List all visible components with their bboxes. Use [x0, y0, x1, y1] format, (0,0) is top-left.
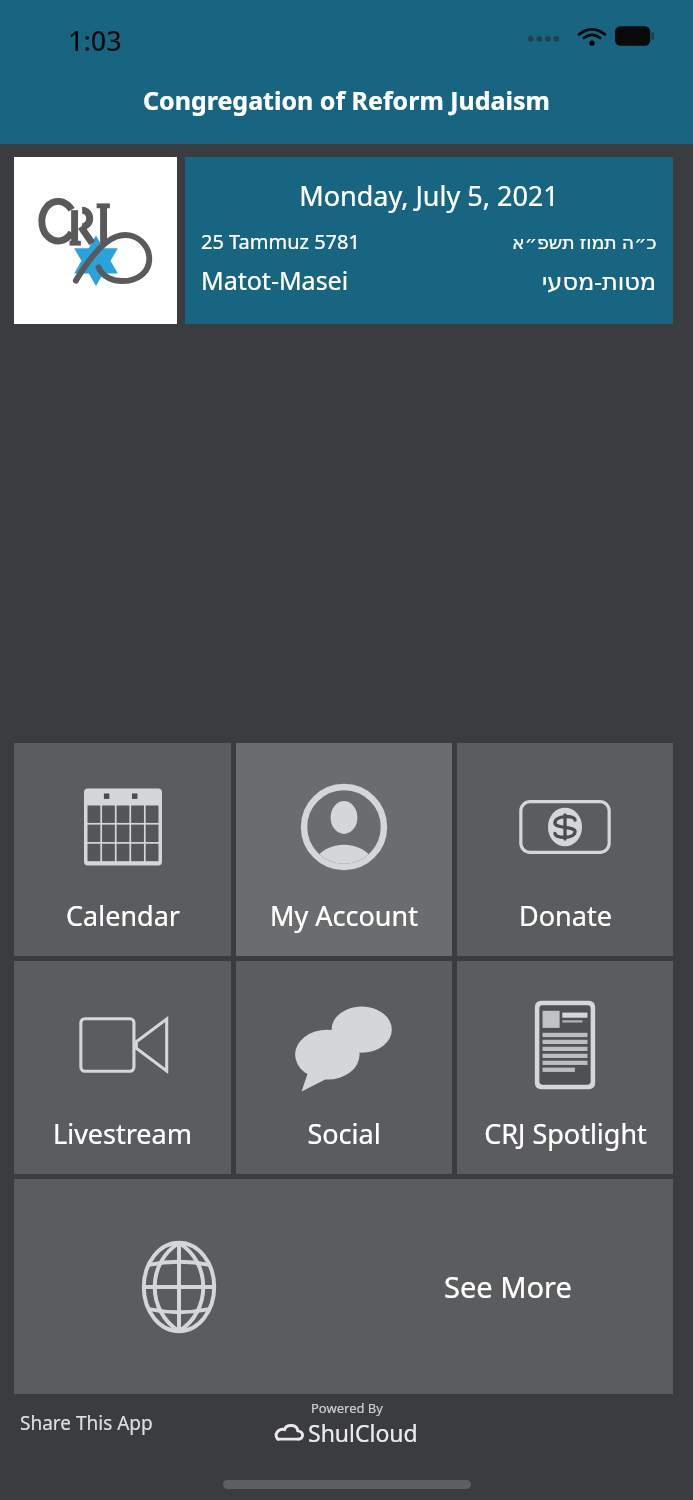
button[interactable]: Social: [236, 961, 452, 1174]
button[interactable]: Livestream: [14, 961, 231, 1174]
staticText: My Account: [270, 897, 418, 934]
staticText: Congregation of Reform Judaism: [143, 83, 550, 117]
button[interactable]: [14, 157, 177, 324]
staticText: Donate: [519, 897, 612, 934]
staticText: Livestream: [53, 1115, 192, 1152]
staticText: 1:03: [68, 22, 122, 59]
button[interactable]: CRJ Spotlight: [457, 961, 673, 1174]
staticText: כ״ה תמוז תשפ״א: [512, 229, 657, 255]
button[interactable]: Powered by ShulCloud: [275, 1399, 418, 1448]
staticText: CRJ Spotlight: [484, 1115, 647, 1152]
staticText: Monday, July 5, 2021: [185, 177, 673, 214]
staticText: מטות-מסעי: [542, 264, 657, 297]
staticText: See More: [444, 1267, 572, 1306]
button[interactable]: Calendar: [14, 743, 231, 956]
button[interactable]: Donate: [457, 743, 673, 956]
button[interactable]: My Account: [236, 743, 452, 956]
button[interactable]: Share This App: [20, 1410, 153, 1436]
staticText: 25 Tammuz 5781: [201, 228, 360, 255]
staticText: Calendar: [66, 897, 180, 934]
button[interactable]: Monday, July 5, 2021: [185, 157, 673, 324]
staticText: Powered By: [311, 1399, 383, 1417]
button[interactable]: See More: [14, 1179, 673, 1394]
staticText: ShulCloud: [308, 1417, 418, 1448]
staticText: Social: [307, 1115, 381, 1152]
staticText: Matot-Masei: [201, 263, 349, 297]
